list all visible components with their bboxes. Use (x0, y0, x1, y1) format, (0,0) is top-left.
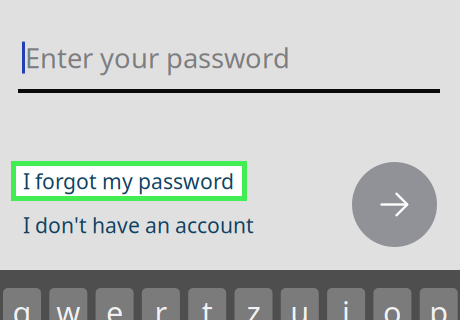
button[interactable]: u (281, 288, 319, 320)
button[interactable]: z (234, 288, 272, 320)
button[interactable]: Continue (352, 162, 437, 247)
staticText: z (246, 291, 260, 320)
staticText: q (12, 291, 31, 320)
staticText: I don't have an account (23, 211, 254, 239)
button[interactable]: q (3, 288, 41, 320)
button[interactable]: p (420, 288, 458, 320)
button[interactable]: t (188, 288, 226, 320)
button[interactable]: o (373, 288, 411, 320)
staticText: o (383, 291, 402, 320)
staticText: r (154, 291, 167, 320)
staticText: t (202, 291, 213, 320)
staticText: u (290, 291, 309, 320)
button[interactable]: Enter your password (18, 42, 444, 93)
button[interactable]: e (96, 288, 134, 320)
button[interactable]: w (49, 288, 87, 320)
button[interactable]: r (142, 288, 180, 320)
button[interactable]: I forgot my password (11, 161, 247, 201)
staticText: Enter your password (25, 39, 290, 76)
button[interactable]: i (327, 288, 365, 320)
staticText: i (342, 291, 350, 320)
staticText: e (106, 291, 123, 320)
staticText: I forgot my password (23, 167, 234, 195)
button[interactable]: I don't have an account (0, 209, 269, 241)
staticText: w (56, 291, 80, 320)
staticText: p (429, 291, 448, 320)
